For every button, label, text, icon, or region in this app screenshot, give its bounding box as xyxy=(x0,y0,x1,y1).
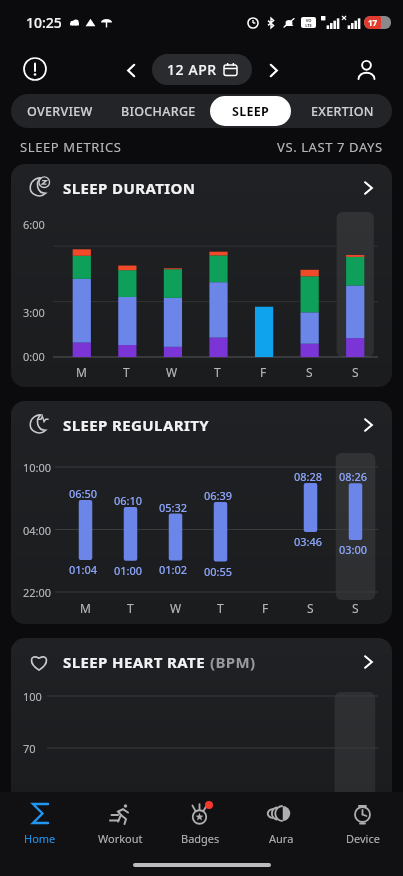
staticText: 10:00 xyxy=(23,460,52,475)
staticText: W xyxy=(170,600,182,616)
button[interactable]: Alerts xyxy=(18,52,52,86)
staticText: VS. LAST 7 DAYS xyxy=(277,138,383,156)
button[interactable]: Aura xyxy=(241,792,322,854)
staticText: M xyxy=(76,364,87,380)
staticText: S xyxy=(306,364,313,380)
button[interactable]: Next day xyxy=(258,55,288,85)
staticText: T xyxy=(127,600,134,616)
staticText: 01:04 xyxy=(69,562,98,577)
staticText: 100 xyxy=(23,689,42,704)
button[interactable]: EXERTION xyxy=(293,96,392,126)
staticText: F xyxy=(262,600,269,616)
staticText: T xyxy=(214,364,221,380)
staticText: 6:00 xyxy=(23,217,45,232)
staticText: S xyxy=(307,600,314,616)
staticText: EXERTION xyxy=(311,103,374,120)
staticText: BIOCHARGE xyxy=(121,103,196,120)
button[interactable]: 12 APR xyxy=(152,54,252,85)
button[interactable]: Profile xyxy=(349,52,383,86)
staticText: Workout xyxy=(98,831,143,846)
staticText: VO LTE xyxy=(305,18,312,28)
staticText: (BPM) xyxy=(210,652,256,672)
button[interactable]: Workout xyxy=(80,792,160,854)
staticText: Aura xyxy=(269,831,294,846)
staticText: T xyxy=(217,600,224,616)
staticText: 03:46 xyxy=(294,534,323,549)
button[interactable]: SLEEP HEART RATE xyxy=(11,638,392,686)
staticText: 17 xyxy=(368,17,378,28)
staticText: Badges xyxy=(181,831,220,846)
staticText: 0:00 xyxy=(23,349,45,364)
staticText: S xyxy=(352,364,359,380)
staticText: 00:55 xyxy=(204,564,233,579)
staticText: 08:28 xyxy=(294,469,323,484)
staticText: 04:00 xyxy=(23,523,52,538)
staticText: Home xyxy=(24,831,56,846)
staticText: 01:00 xyxy=(114,563,143,578)
button[interactable]: OVERVIEW xyxy=(11,96,109,126)
staticText: M xyxy=(80,600,91,616)
staticText: 06:10 xyxy=(114,493,143,508)
staticText: 10:25 xyxy=(26,13,62,32)
staticText: Device xyxy=(346,831,380,846)
staticText: 22:00 xyxy=(23,585,52,600)
staticText: SLEEP HEART RATE xyxy=(63,652,205,672)
button[interactable]: Badges xyxy=(160,792,241,854)
staticText: 06:39 xyxy=(204,488,233,503)
staticText: OVERVIEW xyxy=(27,103,93,120)
staticText: SLEEP REGULARITY xyxy=(63,415,209,435)
button[interactable]: SLEEP xyxy=(210,96,291,126)
staticText: SLEEP xyxy=(232,103,270,120)
staticText: 3:00 xyxy=(23,305,45,320)
button[interactable]: SLEEP DURATION xyxy=(11,164,392,212)
staticText: S xyxy=(352,600,359,616)
staticText: 06:50 xyxy=(69,486,98,501)
staticText: T xyxy=(123,364,130,380)
staticText: F xyxy=(260,364,267,380)
staticText: SLEEP DURATION xyxy=(63,178,196,198)
button[interactable]: Device xyxy=(322,792,403,854)
button[interactable]: Home xyxy=(0,792,80,854)
staticText: 05:32 xyxy=(159,500,188,515)
staticText: 01:02 xyxy=(159,562,188,577)
button[interactable]: BIOCHARGE xyxy=(109,96,208,126)
staticText: W xyxy=(166,364,178,380)
staticText: SLEEP METRICS xyxy=(20,138,122,156)
button[interactable]: SLEEP REGULARITY xyxy=(11,401,392,449)
staticText: 03:00 xyxy=(339,542,368,557)
staticText: 08:26 xyxy=(339,469,368,484)
button[interactable]: Previous day xyxy=(116,55,146,85)
staticText: 12 APR xyxy=(167,60,217,79)
staticText: 70 xyxy=(23,741,36,756)
